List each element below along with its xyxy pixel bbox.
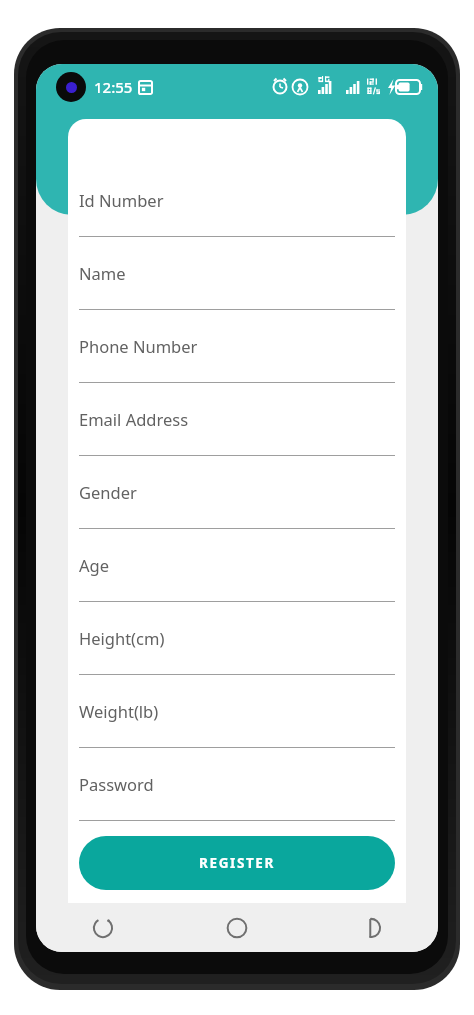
button[interactable]: REGISTER (79, 836, 395, 890)
staticText: Phone Number (79, 335, 198, 357)
button[interactable]: Password (79, 748, 395, 821)
button[interactable]: Height(cm) (79, 602, 395, 675)
button[interactable]: Id Number (79, 164, 395, 237)
button[interactable]: Recent apps (36, 903, 170, 952)
button[interactable]: Name (79, 237, 395, 310)
staticText: Id Number (79, 189, 164, 211)
staticText: Name (79, 262, 126, 284)
staticText: Weight(lb) (79, 700, 159, 722)
staticText: Email Address (79, 408, 189, 430)
button[interactable]: Back (304, 903, 438, 952)
button[interactable]: Phone Number (79, 310, 395, 383)
staticText: Height(cm) (79, 627, 165, 649)
button[interactable]: Gender (79, 456, 395, 529)
staticText: Gender (79, 481, 137, 503)
button[interactable]: Age (79, 529, 395, 602)
button[interactable]: Weight(lb) (79, 675, 395, 748)
button[interactable]: Home (170, 903, 304, 952)
staticText: Age (79, 554, 109, 576)
staticText: 12:55 (94, 77, 133, 97)
button[interactable]: Email Address (79, 383, 395, 456)
staticText: Password (79, 773, 154, 795)
staticText: REGISTER (199, 854, 275, 872)
